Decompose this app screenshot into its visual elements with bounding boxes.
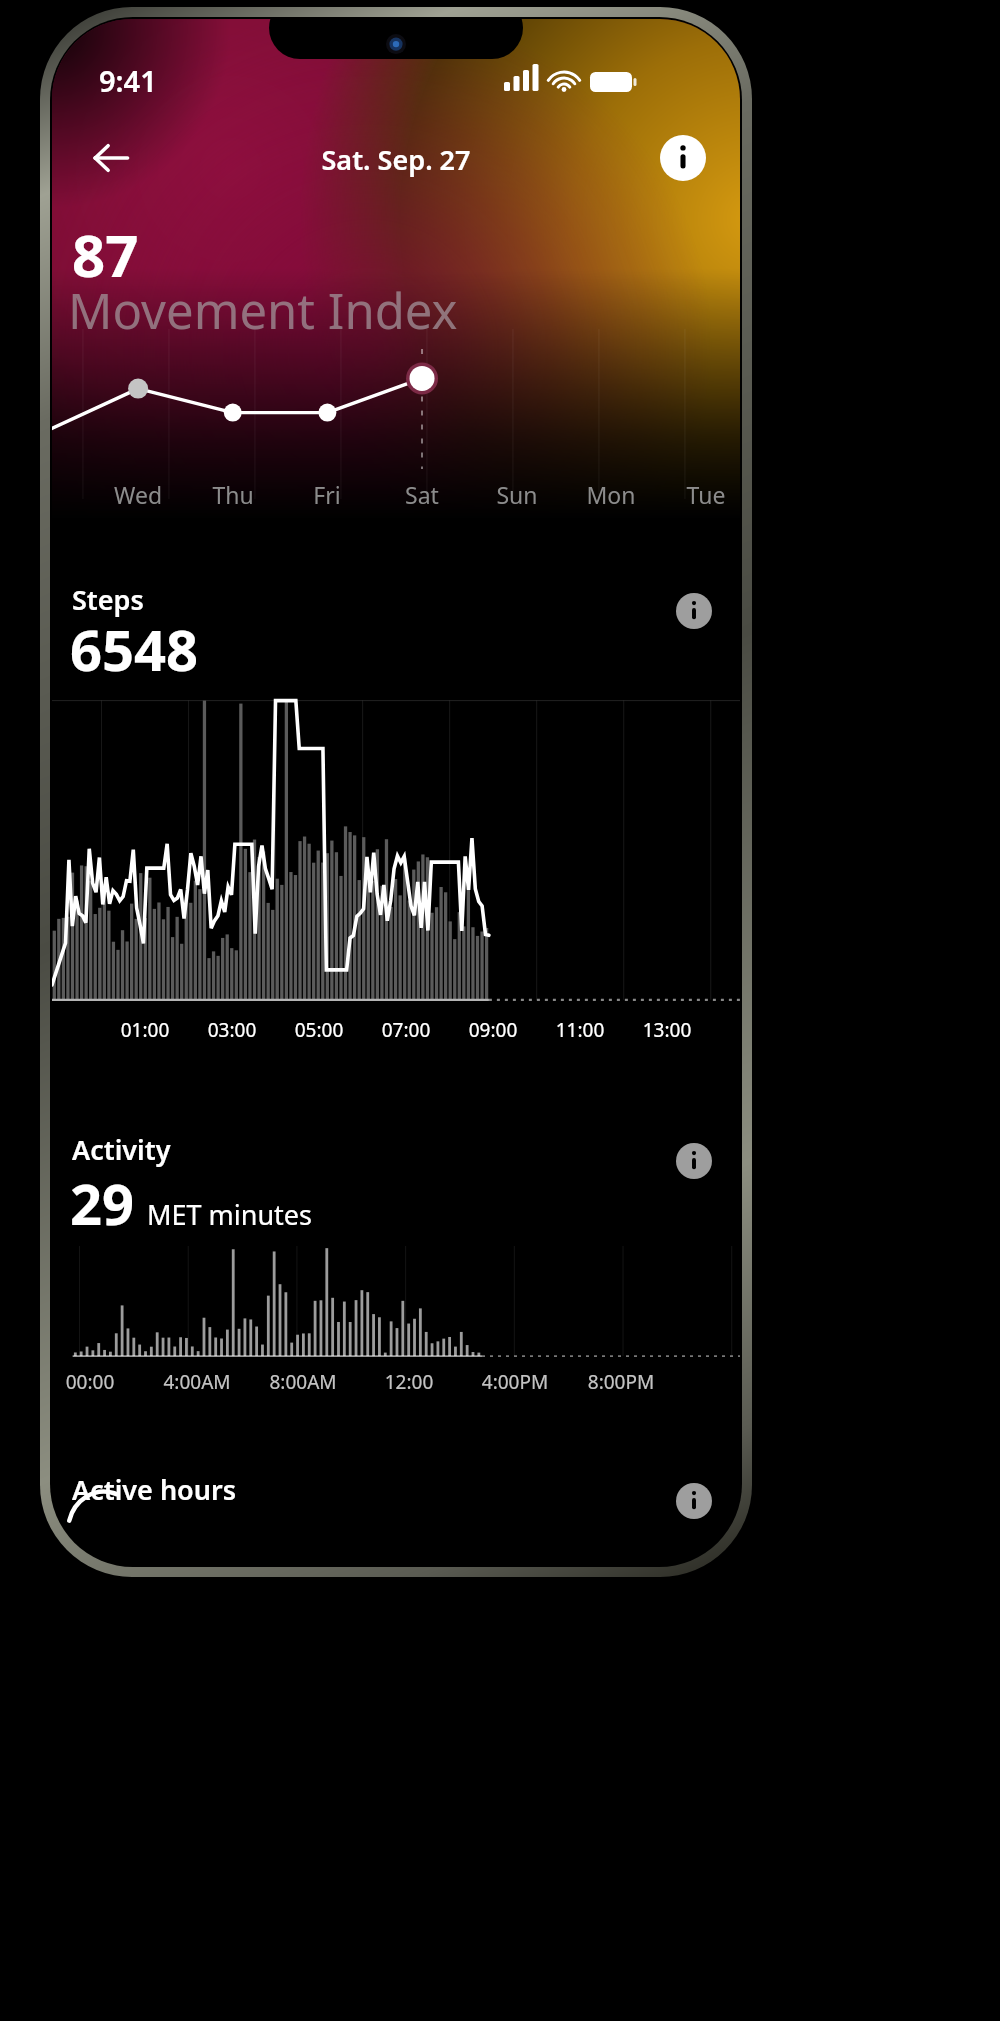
staticText: 03:00 [177,1017,287,1043]
staticText: 07:00 [351,1017,461,1043]
staticText: 05:00 [264,1017,374,1043]
staticText: 29 [70,1165,135,1241]
staticText: Activity [72,1131,171,1168]
button[interactable]: About active hours [668,1475,720,1527]
staticText: 8:00AM [249,1369,357,1395]
button[interactable]: Information [652,127,714,189]
staticText: Mon [571,479,651,510]
staticText: Thu [193,479,273,510]
staticText: Sat [382,479,462,510]
staticText: 11:00 [525,1017,635,1043]
button[interactable]: Steps chart [52,691,740,1011]
button[interactable]: About activity [668,1135,720,1187]
staticText: Sun [477,479,557,510]
staticText: Sat. Sep. 27 [52,141,740,178]
staticText: MET minutes [147,1196,313,1233]
staticText: 8:00PM [567,1369,675,1395]
staticText: Active hours [72,1471,237,1508]
button[interactable]: About steps [668,585,720,637]
staticText: 4:00PM [461,1369,569,1395]
staticText: Fri [287,479,367,510]
staticText: 09:00 [438,1017,548,1043]
staticText: e [52,479,83,510]
staticText: 13:00 [612,1017,722,1043]
staticText: 9:41 [99,61,157,100]
staticText: 87 [72,215,139,294]
staticText: 12:00 [355,1369,463,1395]
staticText: 6548 [70,611,199,687]
staticText: Tue [666,479,740,510]
button[interactable]: Weekly movement index [52,349,740,469]
staticText: Movement Index [68,277,458,344]
button[interactable]: Back [80,127,142,189]
staticText: Wed [98,479,178,510]
staticText: Steps [72,581,144,618]
staticText: 4:00AM [143,1369,251,1395]
staticText: 00:00 [52,1369,144,1395]
staticText: 01:00 [90,1017,200,1043]
button[interactable]: Activity chart [52,1237,740,1365]
